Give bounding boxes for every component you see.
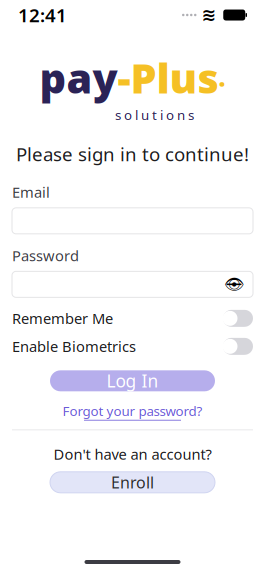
staticText: Enable Biometrics <box>12 337 136 356</box>
staticText: Forgot your password? <box>62 402 202 420</box>
staticText: Password <box>12 246 79 265</box>
staticText: Please sign in to continue! <box>16 142 249 166</box>
button[interactable]: Forgot your password? <box>62 400 202 422</box>
staticText: ≋ <box>201 5 216 25</box>
button[interactable]: Enroll <box>50 472 215 493</box>
button[interactable]: Remember Me <box>12 305 253 331</box>
button[interactable]: Enable Biometrics <box>12 333 253 359</box>
staticText: -Plus <box>117 50 218 105</box>
staticText: Remember Me <box>12 309 113 328</box>
staticText: s o l u t i o n s <box>115 106 194 124</box>
staticText: Log In <box>106 369 158 392</box>
staticText: 12:41 <box>18 3 67 27</box>
button[interactable]: Show password <box>221 271 247 297</box>
staticText: Email <box>12 182 50 202</box>
staticText: pay <box>39 50 117 105</box>
staticText: 👁 <box>224 275 244 293</box>
staticText: . <box>218 61 225 93</box>
staticText: Enroll <box>111 472 154 493</box>
button[interactable]: Log In <box>50 370 215 391</box>
staticText: Don't have an account? <box>53 444 211 464</box>
